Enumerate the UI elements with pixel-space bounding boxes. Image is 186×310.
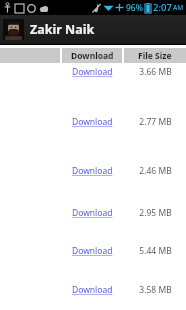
staticText: 96% <box>126 2 143 14</box>
staticText: Download <box>72 207 113 219</box>
staticText: AM <box>173 3 184 12</box>
staticText: Download <box>72 116 113 128</box>
button[interactable]: Download <box>62 116 122 128</box>
staticText: Download <box>71 50 114 62</box>
staticText: Zakir Naik <box>30 21 95 38</box>
staticText: 2.46 MB <box>139 165 172 177</box>
staticText: Download <box>72 165 113 177</box>
staticText: Download <box>72 66 113 78</box>
staticText: 2:07 <box>153 1 172 14</box>
button[interactable]: Download <box>62 207 122 219</box>
staticText: Download <box>72 284 113 296</box>
button[interactable]: App icon <box>0 15 186 44</box>
staticText: 3.58 MB <box>139 284 172 296</box>
other: App icon <box>3 19 24 40</box>
button[interactable]: Download <box>62 66 122 78</box>
button[interactable]: Download <box>62 165 122 177</box>
button[interactable]: Download <box>62 284 122 296</box>
staticText: Download <box>72 245 113 257</box>
staticText: File Size <box>138 50 172 62</box>
button[interactable]: Download <box>62 245 122 257</box>
staticText: 2.77 MB <box>139 116 172 128</box>
staticText: 3.66 MB <box>139 66 172 78</box>
staticText: 5.44 MB <box>139 245 172 257</box>
staticText: 2.95 MB <box>139 207 172 219</box>
